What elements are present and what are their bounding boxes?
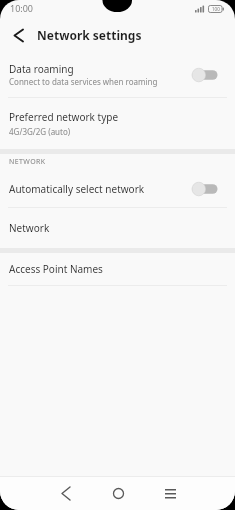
button[interactable]: Automatically select network — [0, 171, 235, 207]
staticText: Network settings — [37, 27, 142, 43]
staticText: Data roaming — [9, 62, 74, 76]
staticText: 4G/3G/2G (auto) — [9, 126, 71, 137]
staticText: Network — [9, 221, 50, 235]
button[interactable] — [92, 477, 144, 510]
button[interactable]: Data roaming — [0, 52, 235, 97]
staticText: Automatically select network — [9, 182, 145, 196]
staticText: Connect to data services when roaming — [9, 76, 158, 87]
staticText: NETWORK — [9, 157, 46, 167]
staticText: Access Point Names — [9, 262, 103, 276]
button[interactable]: Network — [0, 208, 235, 248]
staticText: 100 — [212, 6, 220, 12]
button[interactable]: Access Point Names — [0, 253, 235, 285]
staticText: Preferred network type — [9, 110, 119, 124]
button[interactable] — [40, 477, 92, 510]
staticText: 10:00 — [10, 2, 34, 14]
button[interactable] — [8, 25, 28, 45]
button[interactable]: Preferred network type — [0, 98, 235, 149]
button[interactable] — [144, 477, 196, 510]
